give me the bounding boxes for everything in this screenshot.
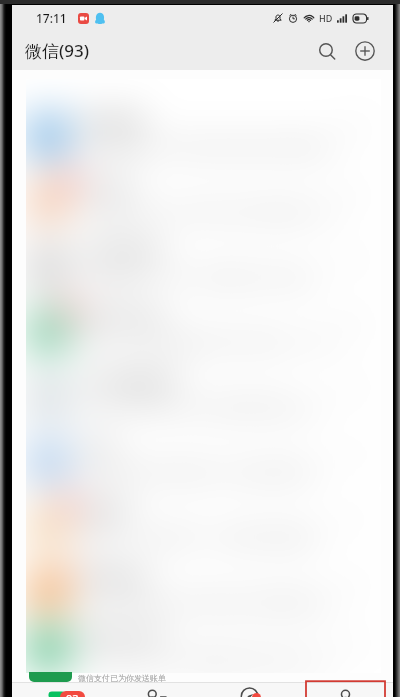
button[interactable]: 3 bbox=[26, 491, 381, 556]
button[interactable]: Me bbox=[298, 683, 393, 697]
staticText: 微信支付已为你发送账单 bbox=[78, 673, 166, 683]
button[interactable]: 文件传输助手 bbox=[26, 361, 381, 426]
button[interactable]: 微信团队 bbox=[26, 101, 381, 166]
staticText: 好的那就这么定了我们明天见面详细聊一聊 bbox=[82, 204, 329, 220]
staticText: 跑步打卡群 bbox=[82, 626, 162, 646]
staticText: 微信团队 bbox=[82, 113, 146, 133]
staticText: 李四：这个方案我觉得还可以再优化一下吧 bbox=[82, 334, 329, 350]
staticText: 家庭群 bbox=[82, 503, 130, 523]
staticText: 央视新闻等12个公众号刚刚发表了新的文章 bbox=[82, 268, 330, 286]
button[interactable]: 2 bbox=[26, 166, 381, 231]
button[interactable]: 王芳 bbox=[26, 426, 381, 491]
staticText: 张小明 bbox=[82, 178, 130, 198]
button[interactable]: Contacts bbox=[108, 683, 203, 697]
staticText: 妈妈：今天记得要早一点回家来吃晚饭啊 bbox=[82, 529, 316, 545]
staticText: 5 bbox=[66, 303, 72, 317]
button[interactable]: 购物优惠 bbox=[26, 556, 381, 621]
staticText: HD bbox=[319, 12, 333, 24]
button[interactable]: Discover bbox=[203, 683, 298, 697]
button[interactable]: Add bbox=[347, 33, 383, 69]
button[interactable]: 跑步打卡群 bbox=[26, 621, 381, 673]
button[interactable]: Search bbox=[309, 33, 345, 69]
staticText: 项目讨论组 bbox=[82, 308, 162, 328]
button[interactable]: Chats bbox=[12, 683, 108, 697]
button[interactable]: 5 bbox=[26, 296, 381, 361]
staticText: 你的微信账号已完成安全验证请注意查收哦 bbox=[82, 139, 329, 155]
staticText: 17:11 bbox=[36, 10, 67, 26]
staticText: 购物优惠 bbox=[82, 568, 146, 588]
staticText: 微信(93) bbox=[25, 39, 90, 62]
staticText: 93 bbox=[66, 691, 79, 697]
staticText: 今天又完成了五公里继续加油努力坚持下去 bbox=[82, 652, 329, 668]
button[interactable]: 订阅号消息 bbox=[26, 231, 381, 296]
staticText: 收到啦真的非常谢谢你今天的热情帮助呀 bbox=[82, 464, 316, 480]
staticText: [文件] 第三季度工作总结报告最终版.pptx bbox=[82, 398, 320, 416]
staticText: 双十一的活动已经开始啦快过来看看吧朋友 bbox=[82, 594, 329, 610]
